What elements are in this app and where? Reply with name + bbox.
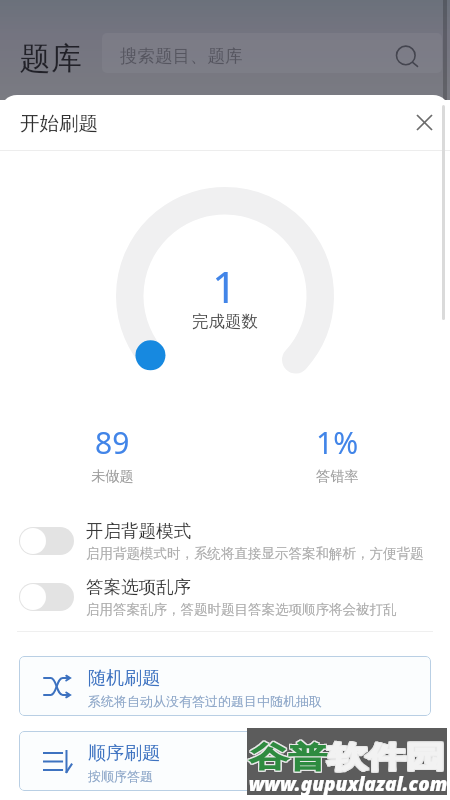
staticText: 按顺序答题 <box>88 768 153 784</box>
staticText: 谷普 <box>248 740 326 776</box>
staticText: 随机刷题 <box>88 667 160 690</box>
staticText: 顺序刷题 <box>88 742 160 765</box>
staticText: 启用背题模式时，系统将直接显示答案和解析，方便背题 <box>86 545 424 562</box>
button[interactable]: 答案选项乱序 <box>0 570 450 624</box>
staticText: 软件园 <box>327 740 445 776</box>
staticText: 未做题 <box>91 467 134 485</box>
staticText: 题库 <box>20 39 82 78</box>
staticText: 1% <box>316 422 359 463</box>
staticText: 谷普 <box>248 738 326 774</box>
staticText: 谷普 <box>250 738 328 774</box>
staticText: 软件园 <box>326 738 444 774</box>
staticText: 软件园 <box>327 739 445 775</box>
staticText: 软件园 <box>326 740 444 776</box>
staticText: 软件园 <box>328 740 446 776</box>
staticText: 软件园 <box>328 738 446 774</box>
staticText: 谷普 <box>249 738 327 774</box>
staticText: 1 <box>212 256 238 316</box>
staticText: 开始刷题 <box>20 111 98 136</box>
button[interactable]: 开启背题模式 <box>0 514 450 568</box>
button[interactable]: 搜索题目、题库 <box>102 33 442 73</box>
staticText: 谷普 <box>249 739 327 775</box>
staticText: 软件园 <box>328 739 446 775</box>
staticText: 谷普 <box>249 740 327 776</box>
staticText: 软件园 <box>326 739 444 775</box>
button[interactable]: 随机刷题 <box>19 656 431 716</box>
staticText: 谷普 <box>248 739 326 775</box>
staticText: 谷普 <box>250 739 328 775</box>
staticText: www.gupuxlazal.com <box>248 771 448 797</box>
staticText: 答错率 <box>316 467 359 485</box>
staticText: 89 <box>95 422 130 463</box>
staticText: 系统将自动从没有答过的题目中随机抽取 <box>88 693 322 709</box>
staticText: 启用答案乱序，答题时题目答案选项顺序将会被打乱 <box>86 601 397 618</box>
staticText: 完成题数 <box>192 311 258 332</box>
staticText: 答案选项乱序 <box>86 576 191 598</box>
staticText: 搜索题目、题库 <box>120 45 243 67</box>
button[interactable]: Close <box>407 105 442 140</box>
staticText: 开启背题模式 <box>86 520 191 542</box>
staticText: 软件园 <box>327 738 445 774</box>
button[interactable]: 顺序刷题 <box>19 731 431 791</box>
staticText: 谷普 <box>250 740 328 776</box>
